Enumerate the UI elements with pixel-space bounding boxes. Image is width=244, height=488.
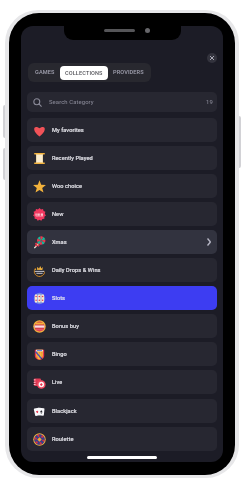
staticText: New	[52, 211, 64, 218]
button[interactable]: Blackjack	[27, 399, 217, 423]
staticText: Blackjack	[52, 408, 77, 415]
staticText: Daily Drops & Wins	[52, 267, 101, 274]
staticText: Recently Played	[52, 155, 93, 162]
button[interactable]: Close	[207, 53, 217, 63]
staticText: COLLECTIONS	[65, 70, 103, 77]
staticText: My favorites	[52, 127, 84, 134]
button[interactable]: New	[27, 202, 217, 226]
button[interactable]: Live	[27, 370, 217, 394]
button[interactable]: COLLECTIONS	[60, 66, 108, 80]
staticText: Search Category	[49, 99, 94, 106]
staticText: Roulette	[52, 436, 74, 443]
button[interactable]: GAMES	[30, 63, 60, 82]
button[interactable]: Slots	[27, 286, 217, 310]
button[interactable]: Xmas	[27, 230, 217, 254]
staticText: Bonus buy	[52, 323, 79, 330]
button[interactable]: Daily Drops & Wins	[27, 258, 217, 282]
staticText: GAMES	[35, 69, 55, 76]
button[interactable]: Bingo	[27, 342, 217, 366]
staticText: Bingo	[52, 351, 67, 358]
staticText: Live	[52, 379, 63, 386]
staticText: Slots	[52, 295, 66, 302]
button[interactable]: Roulette	[27, 427, 217, 451]
button[interactable]: Recently Played	[27, 146, 217, 170]
button[interactable]: Search Category	[27, 92, 217, 112]
staticText: Woo choice	[52, 183, 83, 190]
staticText: 19	[206, 99, 213, 106]
button[interactable]: Bonus buy	[27, 314, 217, 338]
button[interactable]: Woo choice	[27, 174, 217, 198]
staticText: PROVIDERS	[113, 69, 144, 76]
button[interactable]: My favorites	[27, 118, 217, 142]
staticText: Xmas	[52, 239, 67, 246]
button[interactable]: PROVIDERS	[108, 63, 149, 82]
